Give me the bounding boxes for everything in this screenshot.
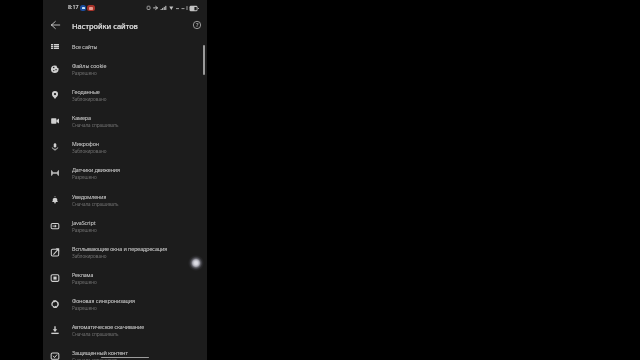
staticText: Автоматическое скачивание [72,323,145,330]
button[interactable]: Help [189,17,205,33]
button[interactable]: Back [47,17,63,33]
staticText: Файлы cookie [72,62,107,69]
staticText: Уведомления [72,193,107,200]
button[interactable]: Все сайты [43,36,207,56]
button[interactable]: Файлы cookie [43,56,207,82]
staticText: Фоновая синхронизация [72,297,135,304]
staticText: Реклама [72,271,94,278]
staticText: Микрофон [72,140,99,147]
button[interactable]: Камера [43,108,207,134]
button[interactable]: JavaScript [43,213,207,239]
button[interactable]: Защищенный контент [43,343,207,360]
staticText: Все сайты [72,43,98,50]
staticText: Всплывающие окна и переадресация [72,245,168,252]
button[interactable]: Уведомления [43,187,207,213]
staticText: Заблокировано [72,148,107,154]
staticText: ? [196,21,199,29]
button[interactable]: Микрофон [43,134,207,160]
staticText: Геоданные [72,88,100,95]
staticText: Сначала спрашивать [72,122,119,128]
staticText: Разрешено [72,227,97,233]
staticText: Сначала спрашивать [72,331,119,337]
staticText: Разрешено [72,174,97,180]
button[interactable]: Всплывающие окна и переадресация [43,239,207,265]
staticText: Разрешено [72,70,97,76]
staticText: 8:17 [68,3,79,10]
staticText: Датчики движения [72,166,121,173]
staticText: Сначала спрашивать [72,357,119,360]
staticText: Заблокировано [72,253,107,259]
staticText: Заблокировано [72,96,107,102]
staticText: Настройки сайтов [72,21,138,31]
staticText: Сначала спрашивать [72,201,119,207]
button[interactable]: Автоматическое скачивание [43,317,207,343]
button[interactable]: Геоданные [43,82,207,108]
staticText: Разрешено [72,279,97,285]
staticText: JavaScript [72,219,96,226]
staticText: Камера [72,114,91,121]
button[interactable]: Датчики движения [43,160,207,186]
button[interactable]: Реклама [43,265,207,291]
staticText: Защищенный контент [72,349,128,356]
staticText: Разрешено [72,305,97,311]
button[interactable]: Фоновая синхронизация [43,291,207,317]
